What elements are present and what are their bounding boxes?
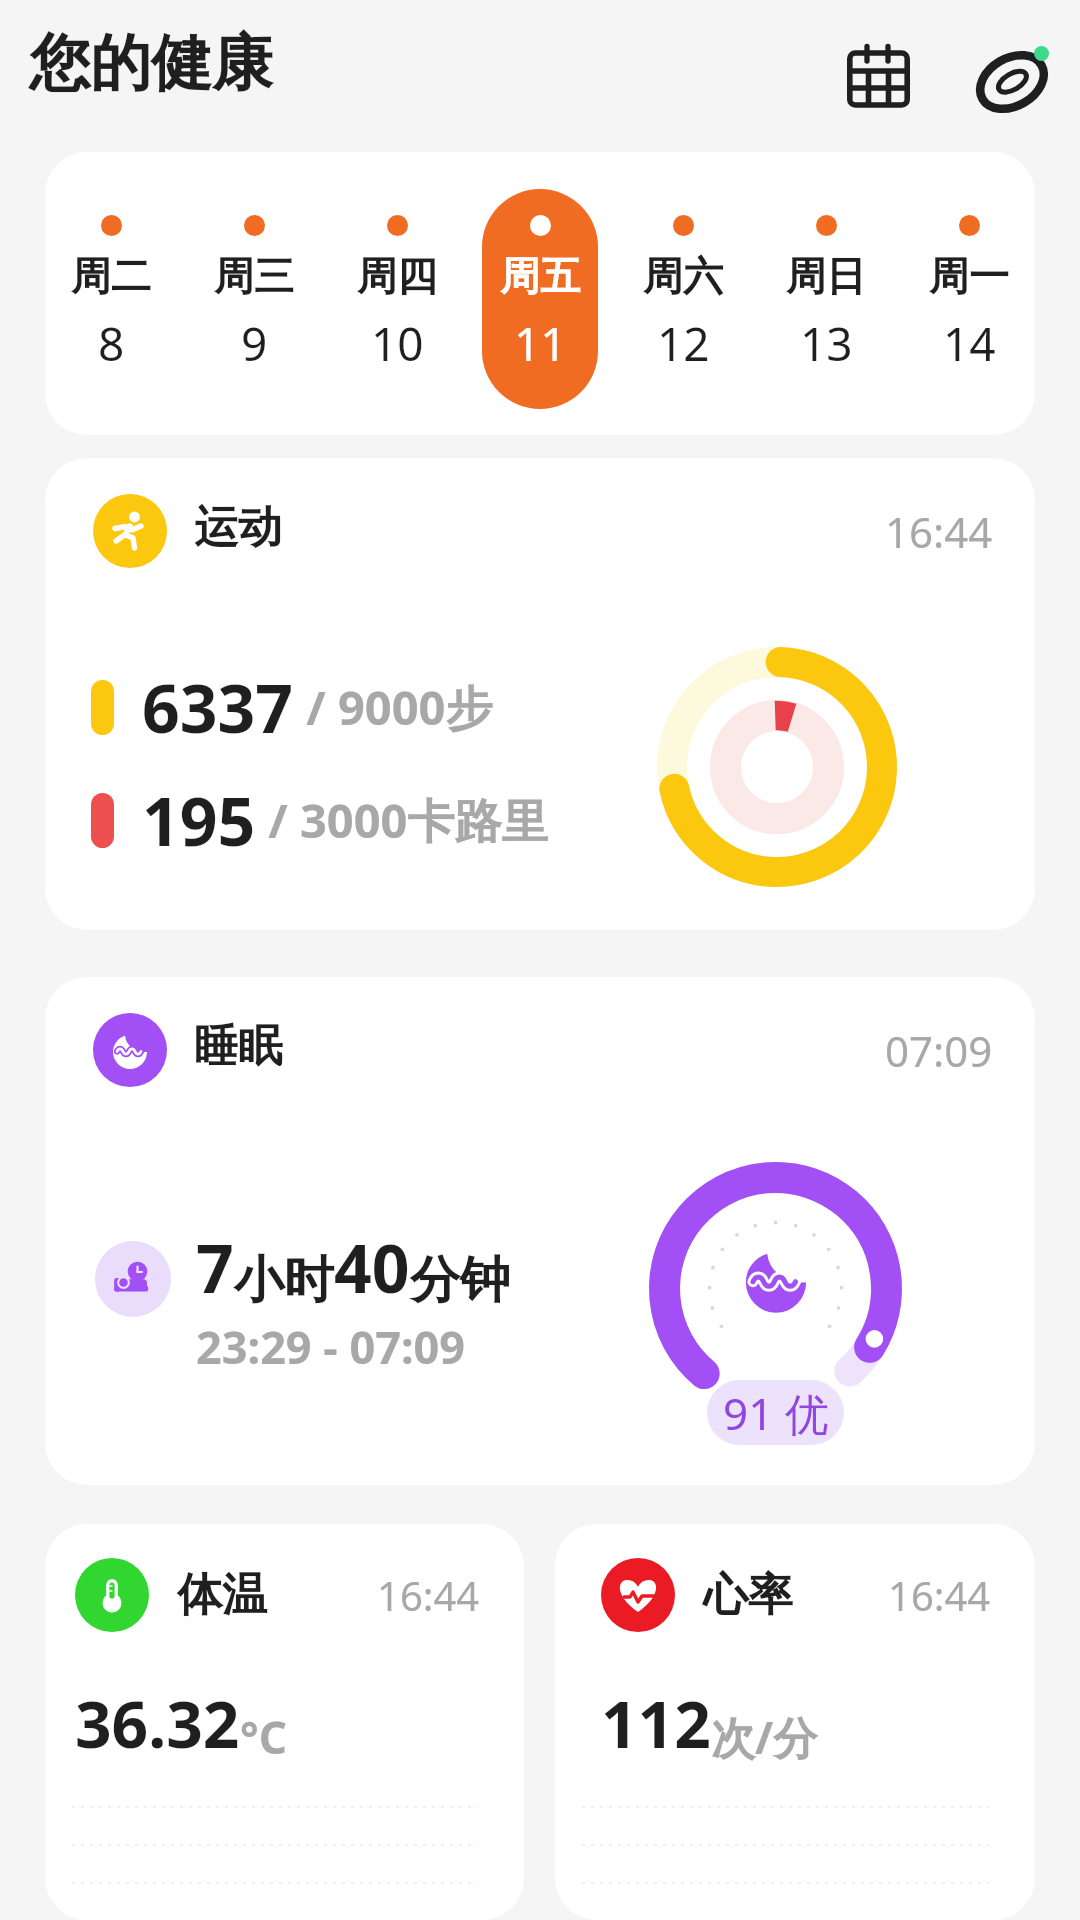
staticText: 11	[514, 312, 567, 375]
staticText: 16:44	[885, 503, 993, 560]
staticText: 周五	[500, 251, 580, 301]
staticText: 23:29 - 07:09	[196, 1316, 466, 1377]
staticText: 周三	[214, 251, 294, 301]
staticText: / 3000卡路里	[256, 788, 549, 852]
button[interactable]: 周五	[482, 189, 598, 409]
staticText: 周日	[786, 251, 866, 301]
button[interactable]: 心率	[555, 1524, 1035, 1920]
button[interactable]: 周一	[911, 189, 1027, 409]
staticText: °C	[240, 1707, 287, 1767]
button[interactable]: 周三	[196, 189, 312, 409]
staticText: 周六	[643, 251, 723, 301]
button[interactable]: 体温	[45, 1524, 524, 1920]
staticText: 8	[98, 312, 125, 375]
staticText: 分钟	[410, 1249, 510, 1312]
staticText: 195	[142, 775, 256, 865]
staticText: 14	[943, 312, 996, 375]
staticText: 10	[371, 312, 424, 375]
staticText: 运动	[194, 500, 282, 555]
button[interactable]: 周日	[768, 189, 884, 409]
button[interactable]: Smart ring device	[962, 22, 1070, 130]
staticText: 13	[800, 312, 853, 375]
staticText: 您的健康	[29, 25, 273, 102]
staticText: 16:44	[377, 1568, 480, 1622]
staticText: 12	[657, 312, 710, 375]
button[interactable]: 睡眠	[45, 977, 1035, 1485]
staticText: / 9000步	[294, 675, 493, 739]
staticText: 91 优	[723, 1383, 829, 1443]
staticText: 小时	[234, 1249, 334, 1312]
staticText: 16:44	[888, 1568, 991, 1622]
staticText: 7	[196, 1222, 234, 1312]
staticText: 周四	[357, 251, 437, 301]
staticText: 6337	[142, 662, 294, 752]
staticText: 睡眠	[194, 1019, 282, 1074]
staticText: 周二	[71, 251, 151, 301]
staticText: 心率	[703, 1567, 793, 1624]
button[interactable]: Calendar	[822, 20, 934, 132]
staticText: 9	[241, 312, 268, 375]
button[interactable]: 运动	[45, 458, 1035, 930]
staticText: 112	[601, 1680, 711, 1767]
button[interactable]: 周二	[53, 189, 169, 409]
staticText: 40	[334, 1222, 410, 1312]
staticText: 07:09	[885, 1022, 993, 1079]
staticText: 周一	[929, 251, 1009, 301]
staticText: 次/分	[711, 1707, 818, 1767]
staticText: 36.32	[75, 1680, 240, 1767]
staticText: 体温	[177, 1567, 267, 1624]
button[interactable]: 周六	[625, 189, 741, 409]
button[interactable]: 周四	[339, 189, 455, 409]
